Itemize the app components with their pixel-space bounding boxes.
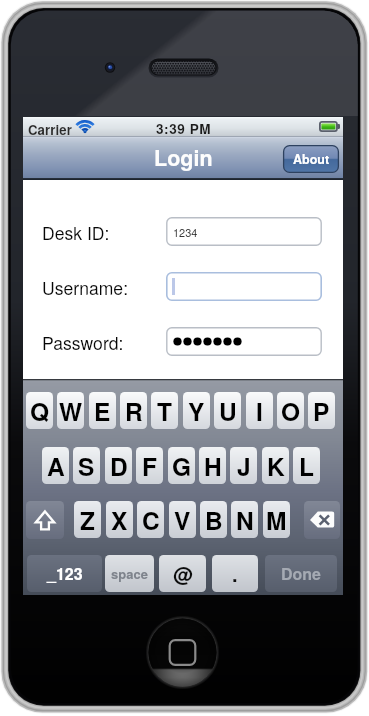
staticText: S [78,448,95,483]
button[interactable]: @ [159,555,206,592]
button[interactable] [166,272,322,301]
button[interactable]: B [200,501,227,538]
button[interactable]: A [42,447,69,484]
button[interactable]: P [308,392,335,429]
button[interactable]: X [106,501,133,538]
button[interactable]: E [89,392,116,429]
button[interactable]: G [168,447,195,484]
staticText: A [47,448,65,483]
staticText: About [293,150,330,168]
staticText: T [157,393,172,428]
staticText: F [142,448,157,483]
staticText: Login [154,142,213,173]
button[interactable]: R [120,392,147,429]
staticText: Desk ID: [42,220,110,245]
button[interactable]: N [231,501,258,538]
staticText: N [236,502,254,537]
button[interactable]: O [277,392,304,429]
staticText: L [299,448,314,483]
button[interactable]: 1234 [166,217,322,246]
button[interactable]: space [105,555,154,592]
staticText: J [237,448,251,483]
staticText: X [111,502,128,537]
button[interactable]: W [57,392,84,429]
staticText: Q [30,393,50,428]
button[interactable]: Y [183,392,210,429]
staticText: space [111,564,148,583]
staticText: Username: [42,275,129,300]
button[interactable]: Shift [26,501,64,539]
staticText: 1234 [173,224,198,240]
staticText: P [313,393,330,428]
button[interactable]: T [151,392,178,429]
staticText: Y [188,393,205,428]
staticText: K [267,448,285,483]
staticText: Z [80,502,95,537]
staticText: _123 [47,562,83,585]
staticText: H [204,448,222,483]
button[interactable]: K [262,447,289,484]
button[interactable]: About [283,145,339,173]
button[interactable]: D [105,447,132,484]
staticText: M [266,502,287,537]
staticText: . [232,559,238,588]
staticText: 3:39 PM [156,119,212,138]
button[interactable]: . [212,555,258,592]
button[interactable]: V [169,501,196,538]
staticText: G [172,448,192,483]
staticText: U [219,393,237,428]
button[interactable]: J [230,447,257,484]
button[interactable]: _123 [27,555,102,592]
staticText: D [110,448,128,483]
staticText: V [174,502,191,537]
button[interactable]: M [263,501,290,538]
staticText: E [94,393,111,428]
button[interactable]: Backspace [304,501,340,539]
button[interactable]: Done [265,555,337,592]
button[interactable]: F [136,447,163,484]
staticText: Carrier [28,120,72,139]
staticText: @ [173,559,193,588]
button[interactable]: Z [74,501,101,538]
button[interactable] [166,327,322,356]
staticText: R [125,393,143,428]
staticText: O [281,393,301,428]
button[interactable]: H [199,447,226,484]
staticText: I [256,393,263,428]
staticText: Done [281,562,322,585]
staticText: W [59,393,83,428]
button[interactable]: S [73,447,100,484]
staticText: C [142,502,160,537]
button[interactable]: C [137,501,164,538]
staticText: B [205,502,223,537]
button[interactable]: I [246,392,273,429]
button[interactable]: U [214,392,241,429]
button[interactable]: L [293,447,320,484]
button[interactable]: Q [26,392,53,429]
staticText: Password: [42,330,124,355]
